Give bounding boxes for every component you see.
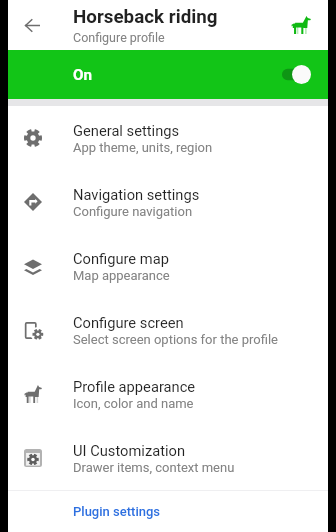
staticText: Configure profile xyxy=(73,30,165,45)
button[interactable]: Back xyxy=(8,1,56,49)
staticText: Configure navigation xyxy=(73,204,193,219)
staticText: Select screen options for the profile xyxy=(73,332,278,347)
button[interactable]: Configure map xyxy=(8,234,328,298)
staticText: Icon, color and name xyxy=(73,396,194,411)
button[interactable]: Profile icon xyxy=(281,5,321,45)
button[interactable]: Navigation settings xyxy=(8,170,328,234)
button[interactable]: On xyxy=(8,50,328,99)
staticText: General settings xyxy=(73,122,180,139)
other: Toggle profile xyxy=(282,65,311,84)
staticText: Horseback riding xyxy=(73,6,218,28)
staticText: App theme, units, region xyxy=(73,140,213,155)
staticText: Configure map xyxy=(73,250,169,267)
staticText: On xyxy=(73,66,92,84)
button[interactable]: Plugin settings xyxy=(8,491,328,532)
staticText: Drawer items, context menu xyxy=(73,460,235,475)
button[interactable]: General settings xyxy=(8,106,328,170)
button[interactable]: Configure screen xyxy=(8,298,328,362)
staticText: Profile appearance xyxy=(73,378,196,395)
staticText: Map appearance xyxy=(73,268,170,283)
staticText: Navigation settings xyxy=(73,186,200,203)
staticText: Configure screen xyxy=(73,314,184,331)
button[interactable]: UI Customization xyxy=(8,426,328,490)
staticText: Plugin settings xyxy=(73,504,161,519)
button[interactable]: Profile appearance xyxy=(8,362,328,426)
staticText: UI Customization xyxy=(73,442,186,459)
